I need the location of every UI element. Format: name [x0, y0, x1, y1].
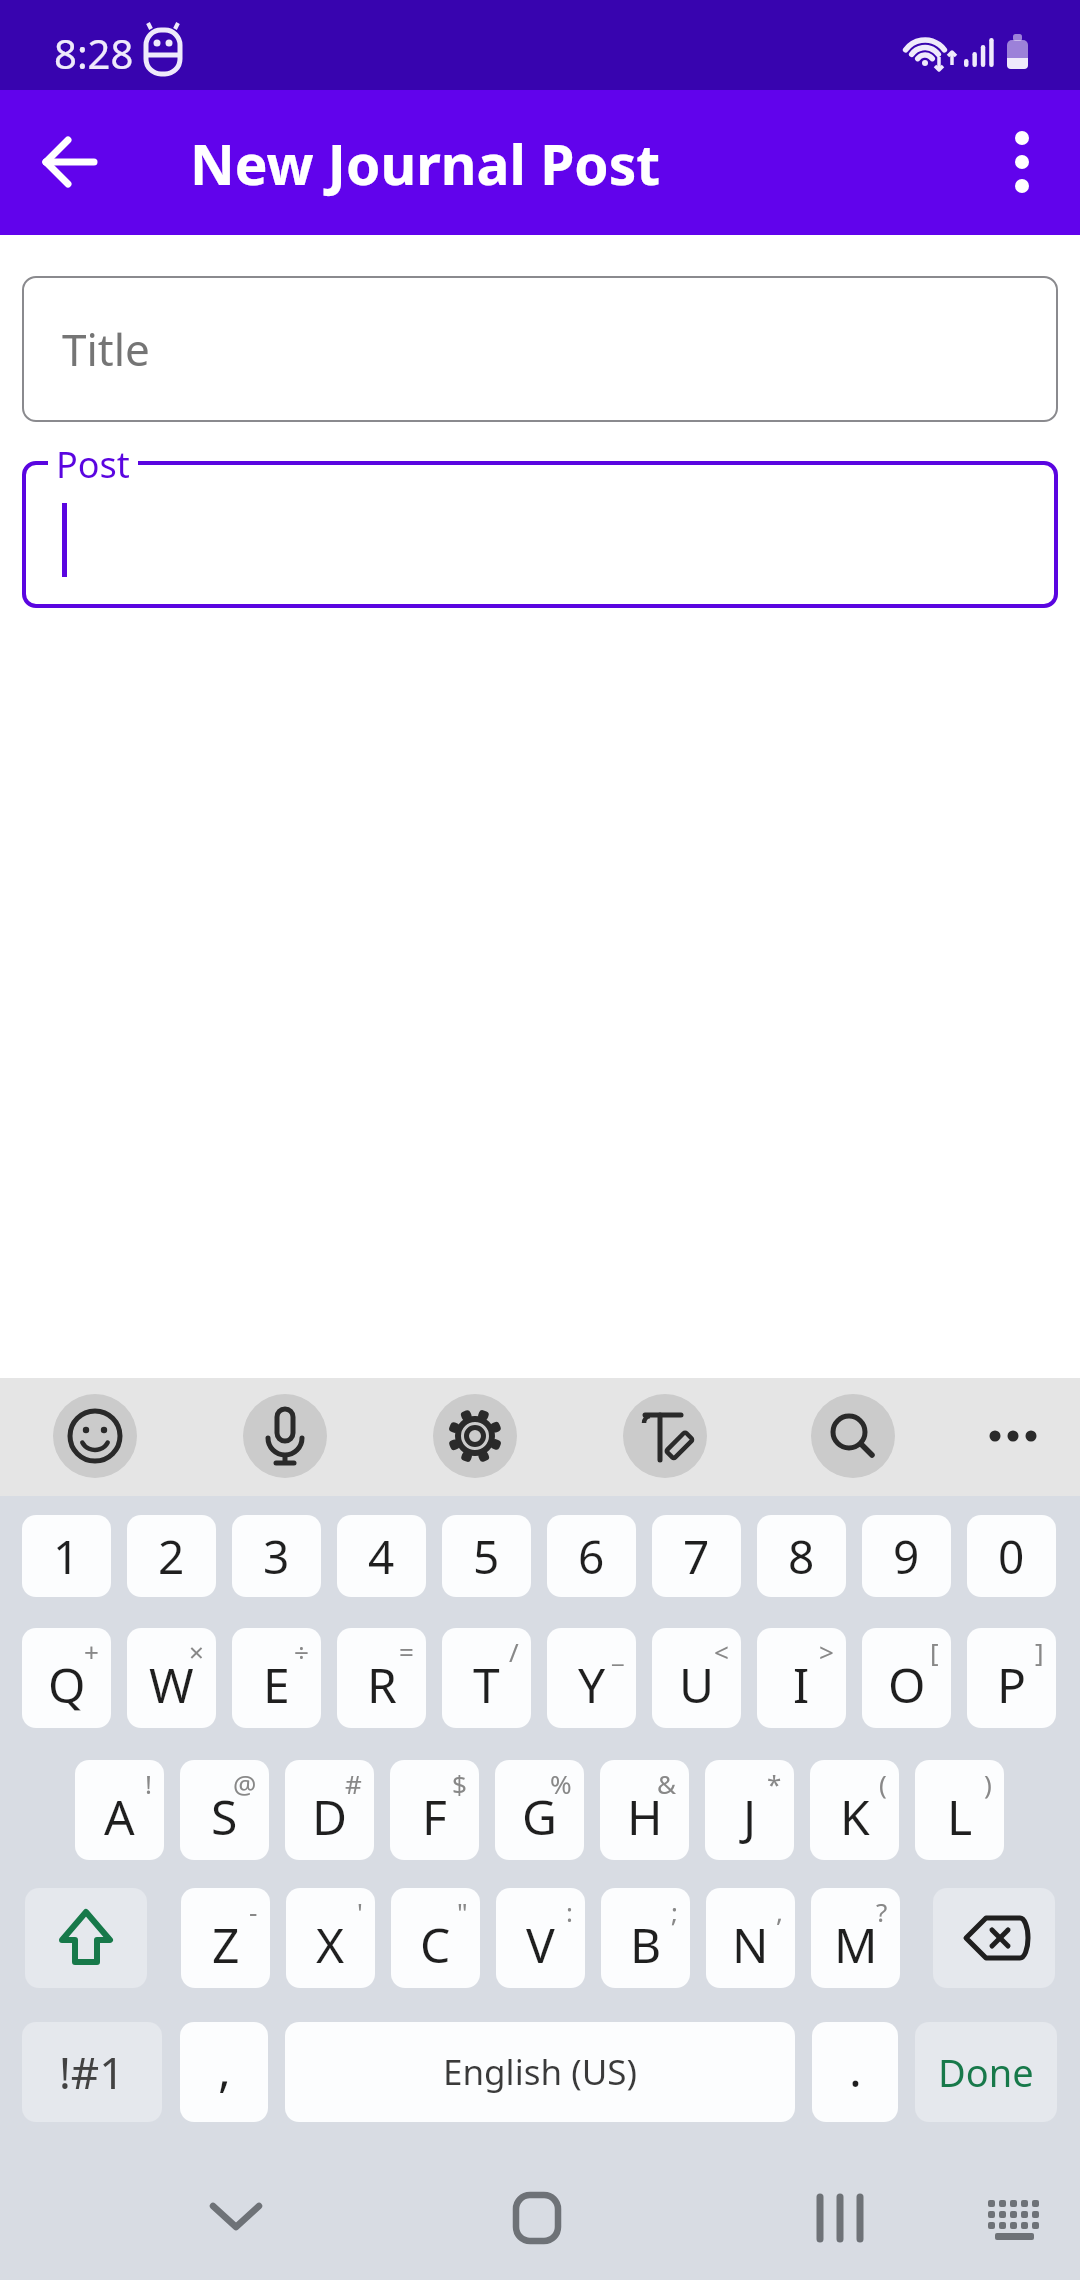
staticText: English (US): [443, 2048, 637, 2096]
staticText: ×: [189, 1634, 204, 1669]
staticText: H: [627, 1784, 663, 1849]
button[interactable]: 0: [967, 1515, 1056, 1597]
button[interactable]: 2: [127, 1515, 216, 1597]
staticText: $: [452, 1766, 467, 1801]
button[interactable]: Z: [181, 1888, 270, 1988]
button[interactable]: [433, 1394, 517, 1478]
staticText: [: [930, 1634, 939, 1669]
button[interactable]: N: [706, 1888, 795, 1988]
staticText: Q: [48, 1652, 86, 1717]
staticText: %: [550, 1766, 572, 1801]
staticText: &: [657, 1766, 677, 1801]
staticText: 7: [683, 1525, 710, 1588]
button[interactable]: Title: [22, 276, 1058, 422]
button[interactable]: U: [652, 1628, 741, 1728]
button[interactable]: [811, 1394, 895, 1478]
staticText: (: [879, 1766, 887, 1801]
button[interactable]: 7: [652, 1515, 741, 1597]
button[interactable]: English (US): [285, 2022, 795, 2122]
button[interactable]: V: [496, 1888, 585, 1988]
button[interactable]: Y: [547, 1628, 636, 1728]
button[interactable]: 4: [337, 1515, 426, 1597]
staticText: W: [149, 1652, 194, 1717]
button[interactable]: H: [600, 1760, 689, 1860]
staticText: X: [316, 1912, 345, 1977]
staticText: Done: [938, 2046, 1034, 2098]
button[interactable]: T: [442, 1628, 531, 1728]
button[interactable]: M: [811, 1888, 900, 1988]
staticText: .: [849, 2036, 862, 2101]
button[interactable]: [22, 114, 118, 210]
button[interactable]: S: [180, 1760, 269, 1860]
button[interactable]: ,: [180, 2022, 268, 2122]
button[interactable]: 3: [232, 1515, 321, 1597]
staticText: Title: [62, 319, 150, 379]
staticText: ÷: [294, 1634, 309, 1669]
staticText: +: [84, 1634, 99, 1669]
staticText: _: [612, 1634, 624, 1669]
staticText: 3: [263, 1525, 290, 1588]
staticText: G: [522, 1784, 557, 1849]
button[interactable]: K: [810, 1760, 899, 1860]
button[interactable]: P: [967, 1628, 1056, 1728]
staticText: Z: [212, 1912, 240, 1977]
staticText: 5: [473, 1525, 500, 1588]
staticText: ": [457, 1894, 468, 1929]
staticText: T: [473, 1652, 500, 1717]
button[interactable]: E: [232, 1628, 321, 1728]
staticText: U: [679, 1652, 715, 1717]
button[interactable]: R: [337, 1628, 426, 1728]
button[interactable]: Q: [22, 1628, 111, 1728]
button[interactable]: I: [757, 1628, 846, 1728]
staticText: Post: [56, 440, 130, 489]
button[interactable]: 5: [442, 1515, 531, 1597]
staticText: 0: [998, 1525, 1025, 1588]
staticText: ,: [776, 1894, 783, 1929]
staticText: <: [714, 1634, 729, 1669]
button[interactable]: L: [915, 1760, 1004, 1860]
staticText: #: [345, 1766, 362, 1801]
button[interactable]: A: [75, 1760, 164, 1860]
staticText: :: [566, 1894, 573, 1929]
staticText: ?: [876, 1894, 888, 1929]
button[interactable]: [53, 1394, 137, 1478]
staticText: ,: [218, 2036, 231, 2101]
button[interactable]: J: [705, 1760, 794, 1860]
button[interactable]: .: [812, 2022, 898, 2122]
staticText: F: [422, 1784, 447, 1849]
staticText: B: [630, 1912, 662, 1977]
button[interactable]: B: [601, 1888, 690, 1988]
staticText: S: [211, 1784, 238, 1849]
button[interactable]: [25, 1888, 147, 1988]
button[interactable]: [623, 1394, 707, 1478]
button[interactable]: D: [285, 1760, 374, 1860]
button[interactable]: 6: [547, 1515, 636, 1597]
staticText: J: [743, 1784, 757, 1849]
button[interactable]: !#1: [22, 2022, 162, 2122]
staticText: M: [834, 1912, 878, 1977]
staticText: V: [526, 1912, 555, 1977]
button[interactable]: Done: [915, 2022, 1057, 2122]
staticText: N: [732, 1912, 769, 1977]
button[interactable]: F: [390, 1760, 479, 1860]
button[interactable]: 8: [757, 1515, 846, 1597]
button[interactable]: 1: [22, 1515, 111, 1597]
button[interactable]: C: [391, 1888, 480, 1988]
button[interactable]: X: [286, 1888, 375, 1988]
button[interactable]: [933, 1888, 1055, 1988]
button[interactable]: [0, 2150, 1080, 2280]
staticText: 9: [893, 1525, 920, 1588]
button[interactable]: G: [495, 1760, 584, 1860]
staticText: 2: [158, 1525, 185, 1588]
button[interactable]: O: [862, 1628, 951, 1728]
button[interactable]: W: [127, 1628, 216, 1728]
button[interactable]: [243, 1394, 327, 1478]
staticText: =: [399, 1634, 414, 1669]
staticText: 8:28: [54, 26, 134, 80]
button[interactable]: 9: [862, 1515, 951, 1597]
staticText: *: [767, 1766, 782, 1801]
button[interactable]: [22, 461, 1058, 608]
staticText: O: [888, 1652, 926, 1717]
staticText: 4: [368, 1525, 395, 1588]
button[interactable]: [974, 114, 1070, 210]
